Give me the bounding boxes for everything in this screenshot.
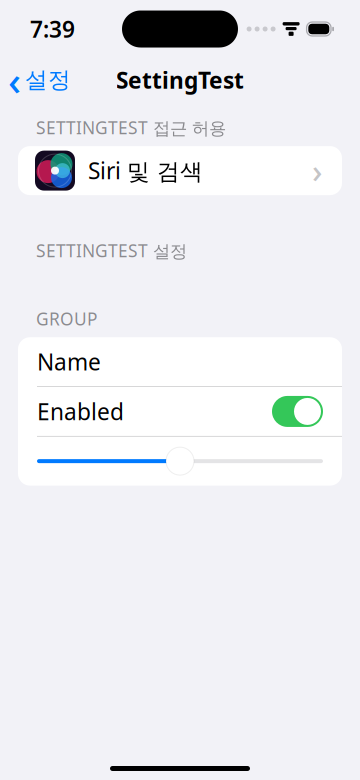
staticText: 7:39	[30, 14, 75, 44]
staticText: Enabled	[37, 396, 124, 426]
staticText: ‹	[8, 53, 21, 106]
staticText: Name	[37, 347, 101, 377]
button[interactable]: ‹	[0, 49, 81, 110]
staticText: 설정	[25, 66, 71, 94]
staticText: ›	[312, 149, 322, 192]
staticText: SETTINGTEST 접근 허용	[36, 116, 226, 139]
button[interactable]: Siri 및 검색	[18, 146, 342, 195]
staticText: SETTINGTEST 설정	[36, 239, 187, 262]
staticText: GROUP	[36, 307, 97, 330]
staticText: Siri 및 검색	[88, 155, 203, 186]
staticText: SettingTest	[116, 65, 244, 95]
button[interactable]: Enabled	[18, 387, 342, 436]
